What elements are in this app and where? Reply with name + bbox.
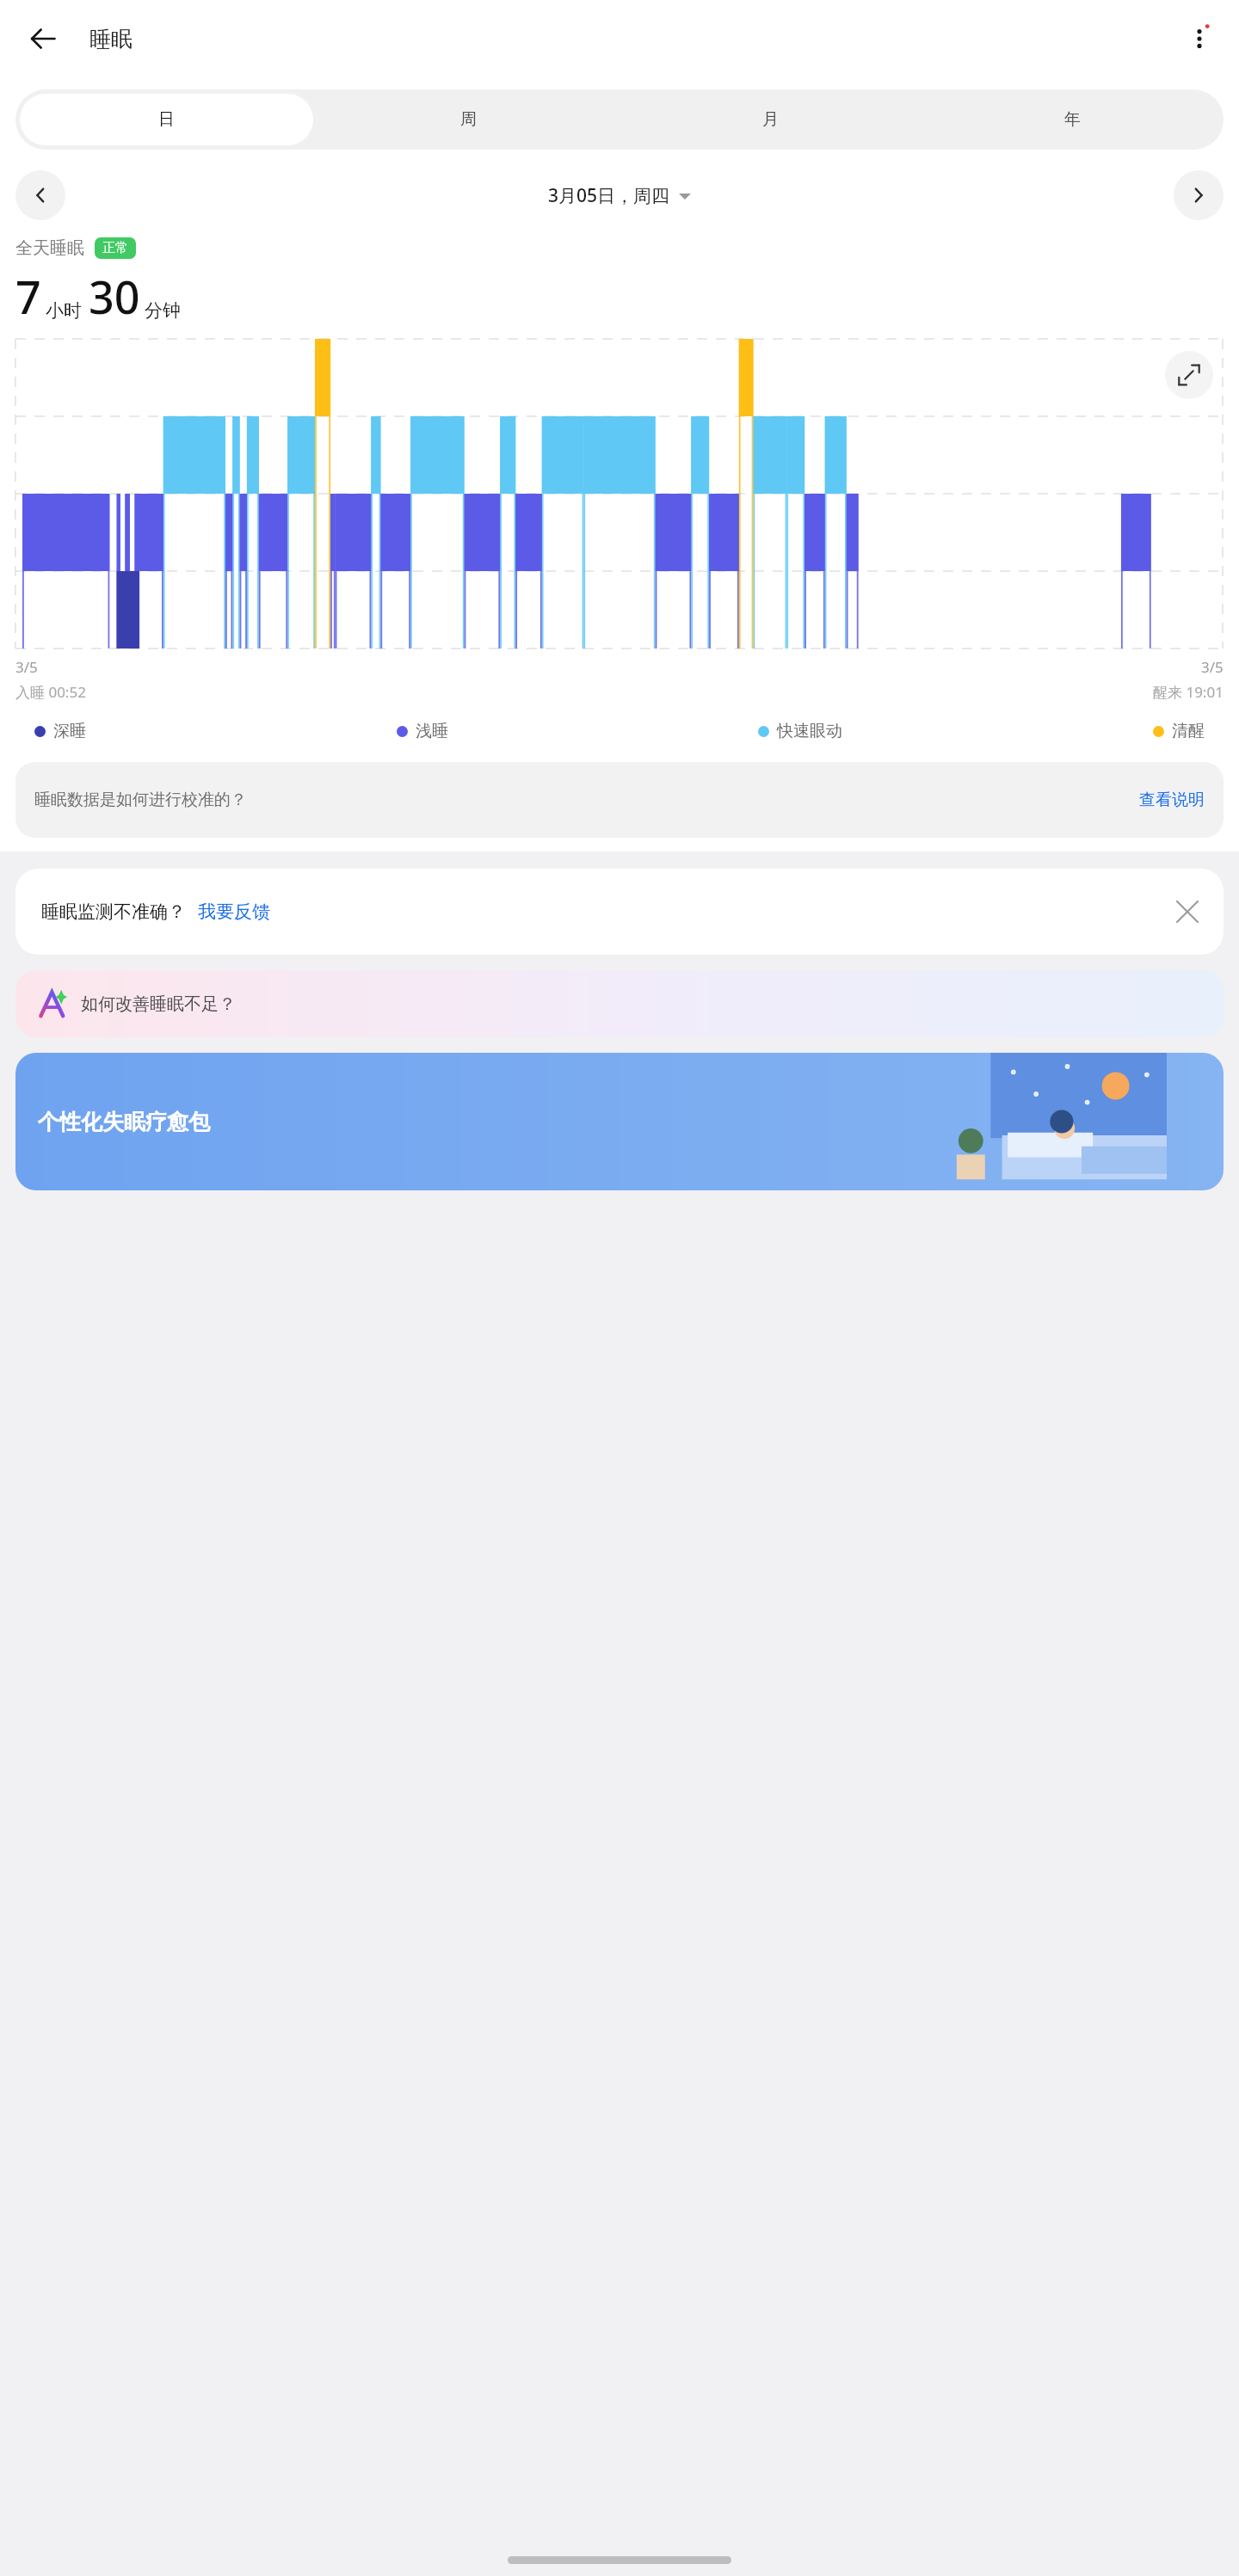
button[interactable]: 月 xyxy=(624,94,917,145)
staticText: 7 xyxy=(15,266,41,327)
button[interactable]: Expand chart xyxy=(1165,351,1213,399)
button[interactable]: 快速眼动 xyxy=(758,721,842,741)
staticText: 我要反馈 xyxy=(198,901,270,923)
staticText: 个性化失眠疗愈包 xyxy=(38,1109,210,1135)
staticText: 睡眠数据是如何进行校准的？ xyxy=(34,790,247,810)
button[interactable]: Back xyxy=(19,15,67,63)
staticText: 醒来 19:01 xyxy=(1153,682,1224,702)
staticText: 3/5 xyxy=(1201,657,1224,677)
staticText: 深睡 xyxy=(53,721,86,741)
staticText: 入睡 00:52 xyxy=(15,682,86,702)
button[interactable]: Next day xyxy=(1174,170,1224,220)
staticText: 月 xyxy=(762,109,779,130)
staticText: 清醒 xyxy=(1172,721,1205,741)
button[interactable]: 睡眠数据是如何进行校准的？ xyxy=(15,762,1224,838)
staticText: 3/5 xyxy=(15,657,38,677)
staticText: 3月05日，周四 xyxy=(548,183,670,208)
staticText: 全天睡眠 xyxy=(15,237,84,259)
staticText: 周 xyxy=(460,109,477,130)
button[interactable]: 如何改善睡眠不足？ xyxy=(15,970,1224,1037)
button[interactable]: 个性化失眠疗愈包 xyxy=(15,1053,1224,1190)
staticText: 查看说明 xyxy=(1139,790,1205,810)
button[interactable]: Previous day xyxy=(15,170,65,220)
button[interactable]: 日 xyxy=(20,94,313,145)
button[interactable]: 睡眠监测不准确？ xyxy=(15,869,1224,955)
staticText: 30 xyxy=(89,266,140,327)
staticText: 睡眠 xyxy=(89,26,133,52)
staticText: 浅睡 xyxy=(416,721,448,741)
staticText: 年 xyxy=(1064,109,1081,130)
button[interactable]: 深睡 xyxy=(34,721,86,741)
staticText: 快速眼动 xyxy=(777,721,842,741)
staticText: 如何改善睡眠不足？ xyxy=(81,993,236,1015)
button[interactable]: Close xyxy=(1167,891,1208,932)
button[interactable]: 年 xyxy=(926,94,1219,145)
button[interactable]: 浅睡 xyxy=(397,721,448,741)
button[interactable]: More options xyxy=(1175,15,1224,63)
staticText: 睡眠监测不准确？ xyxy=(41,901,186,923)
button[interactable]: 3月05日，周四 xyxy=(548,183,691,208)
staticText: 日 xyxy=(158,109,175,130)
staticText: 小时 xyxy=(46,299,82,322)
button[interactable]: 周 xyxy=(322,94,615,145)
staticText: 正常 xyxy=(102,240,128,256)
staticText: 分钟 xyxy=(145,299,181,322)
button[interactable]: 清醒 xyxy=(1153,721,1205,741)
